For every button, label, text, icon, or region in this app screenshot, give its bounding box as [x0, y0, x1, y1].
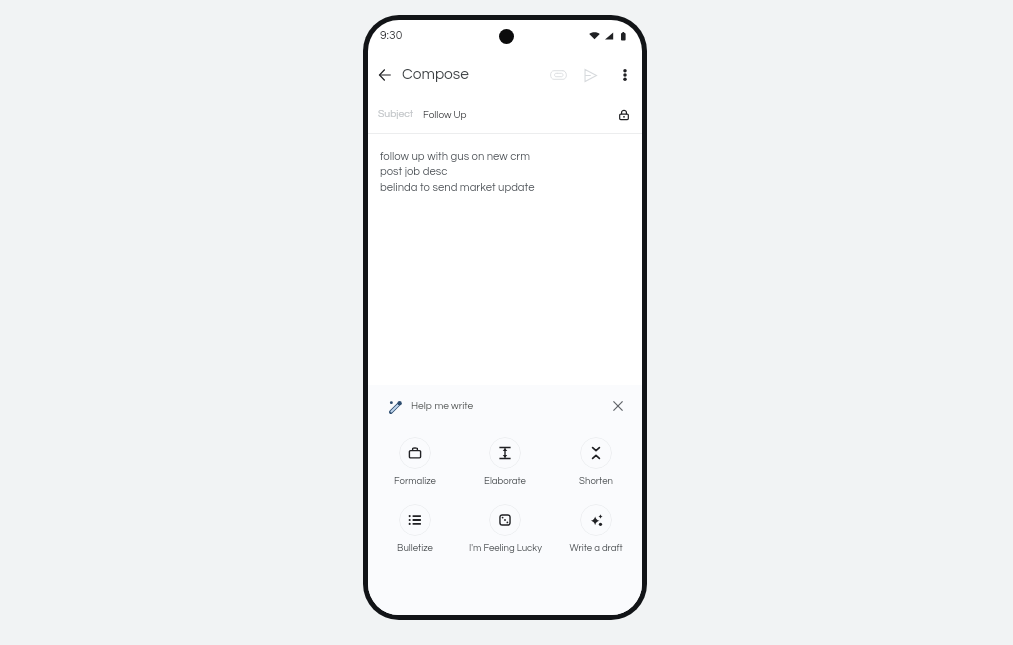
button[interactable]: I'm Feeling Lucky	[461, 504, 549, 553]
staticText: Elaborate	[484, 476, 526, 486]
button[interactable]: Bulletize	[371, 504, 459, 553]
staticText: Shorten	[579, 476, 613, 486]
staticText: Subject	[378, 109, 414, 120]
button[interactable]: Elaborate	[461, 437, 549, 486]
staticText: Help me write	[411, 401, 474, 412]
button[interactable]: Send	[577, 62, 603, 88]
staticText: Compose	[402, 66, 469, 82]
staticText: Formalize	[394, 476, 436, 486]
staticText: Follow Up	[423, 110, 467, 120]
staticText: follow up with gus on new crm post job d…	[380, 151, 535, 194]
button[interactable]: Write a draft	[552, 504, 640, 553]
staticText: I'm Feeling Lucky	[469, 543, 542, 553]
button[interactable]: Confidential mode	[612, 103, 636, 127]
button[interactable]: Formalize	[371, 437, 459, 486]
button[interactable]: Back	[371, 61, 399, 89]
button[interactable]: Close	[606, 394, 630, 418]
staticText: Bulletize	[397, 543, 433, 553]
staticText: Write a draft	[569, 543, 623, 553]
button[interactable]: More options	[612, 62, 638, 88]
button[interactable]: Attach file	[545, 62, 571, 88]
staticText: 9:30	[380, 29, 403, 41]
button[interactable]: Shorten	[552, 437, 640, 486]
